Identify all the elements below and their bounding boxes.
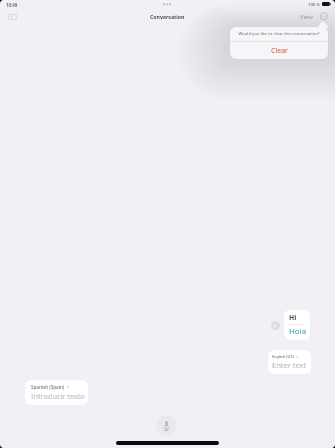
- button[interactable]: View: [298, 11, 315, 23]
- button[interactable]: English (US): [268, 350, 311, 374]
- staticText: Hi: [289, 313, 297, 322]
- button[interactable]: Show sidebar: [3, 10, 21, 23]
- button[interactable]: Microphone: [156, 415, 177, 436]
- staticText: View: [300, 13, 313, 21]
- button[interactable]: Play: [271, 321, 280, 330]
- button[interactable]: Spanish (Spain): [25, 380, 88, 405]
- button[interactable]: Clear: [230, 42, 328, 59]
- button[interactable]: More options: [318, 10, 330, 22]
- staticText: 100 %: [308, 2, 320, 8]
- staticText: Introducir texto: [31, 391, 85, 401]
- staticText: Clear: [271, 46, 288, 56]
- staticText: Enter text: [272, 360, 307, 370]
- staticText: English (US): [272, 354, 294, 359]
- staticText: Spanish (Spain): [31, 384, 65, 390]
- staticText: Would you like to clear this conversatio…: [238, 31, 320, 37]
- staticText: Hola: [289, 326, 307, 337]
- staticText: Conversation: [150, 13, 185, 20]
- staticText: 10:49: [6, 2, 18, 8]
